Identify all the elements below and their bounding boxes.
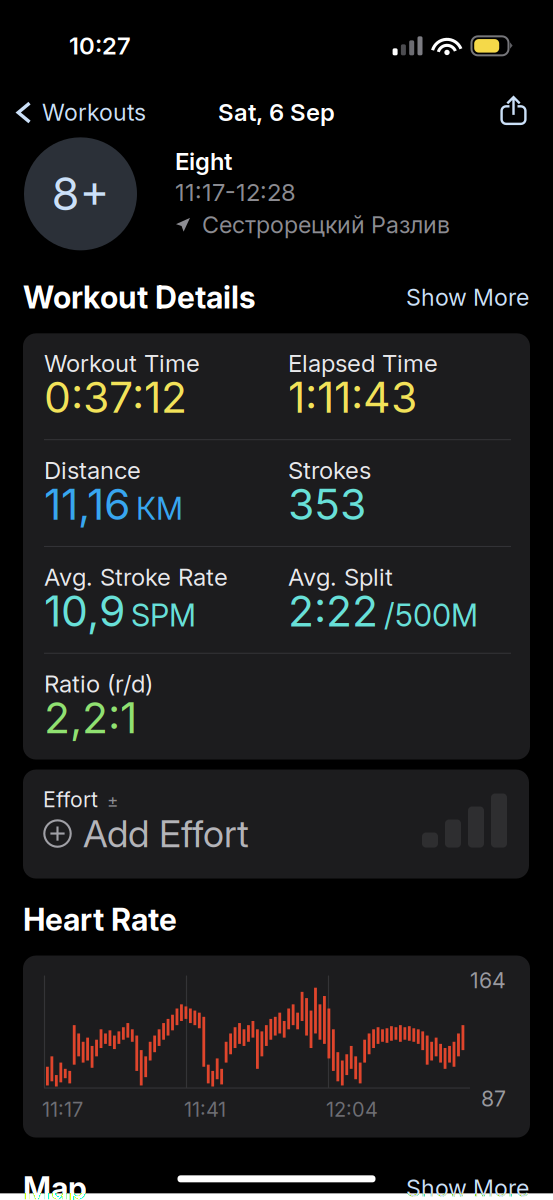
button[interactable]: Share: [500, 92, 553, 132]
staticText: 8+: [51, 166, 109, 221]
staticText: Workouts: [42, 98, 146, 126]
staticText: 11:17-12:28: [175, 178, 296, 207]
staticText: Workout Time: [44, 349, 200, 378]
staticText: Add Effort: [83, 811, 249, 856]
staticText: Sat, 6 Sep: [218, 98, 335, 127]
staticText: 11,16: [44, 478, 130, 530]
staticText: Eight: [175, 147, 232, 176]
staticText: 87: [481, 1086, 506, 1111]
staticText: 0:37:12: [44, 371, 187, 423]
staticText: Avg. Split: [288, 562, 393, 591]
staticText: 2,2:1: [44, 692, 137, 743]
staticText: ±: [107, 790, 118, 811]
button[interactable]: Effort: [23, 769, 529, 878]
staticText: Effort: [43, 787, 98, 812]
staticText: Сестрорецкий Разлив: [202, 211, 450, 239]
staticText: 11:41: [184, 1097, 226, 1121]
staticText: 10,9: [44, 585, 125, 637]
staticText: 164: [470, 967, 506, 993]
staticText: 12:04: [326, 1097, 378, 1121]
staticText: Map: [23, 1169, 87, 1200]
button[interactable]: Show More: [406, 283, 529, 311]
staticText: 353: [288, 478, 366, 530]
staticText: Show More: [406, 1174, 529, 1200]
staticText: Elapsed Time: [288, 349, 438, 378]
staticText: 10:27: [69, 31, 131, 60]
staticText: Strokes: [288, 456, 371, 485]
staticText: Distance: [44, 456, 141, 485]
staticText: 11:17: [42, 1097, 83, 1121]
button[interactable]: Workouts: [0, 91, 146, 133]
staticText: Heart Rate: [23, 901, 177, 938]
staticText: SPM: [131, 597, 196, 634]
staticText: КМ: [136, 490, 183, 527]
staticText: Avg. Stroke Rate: [44, 562, 228, 591]
staticText: /500M: [384, 597, 478, 634]
staticText: Show More: [406, 283, 529, 311]
staticText: 1:11:43: [288, 371, 417, 423]
staticText: Ratio (r/d): [44, 669, 153, 698]
staticText: Workout Details: [23, 279, 256, 316]
staticText: 2:22: [288, 585, 378, 637]
button[interactable]: Show More: [406, 1174, 529, 1200]
